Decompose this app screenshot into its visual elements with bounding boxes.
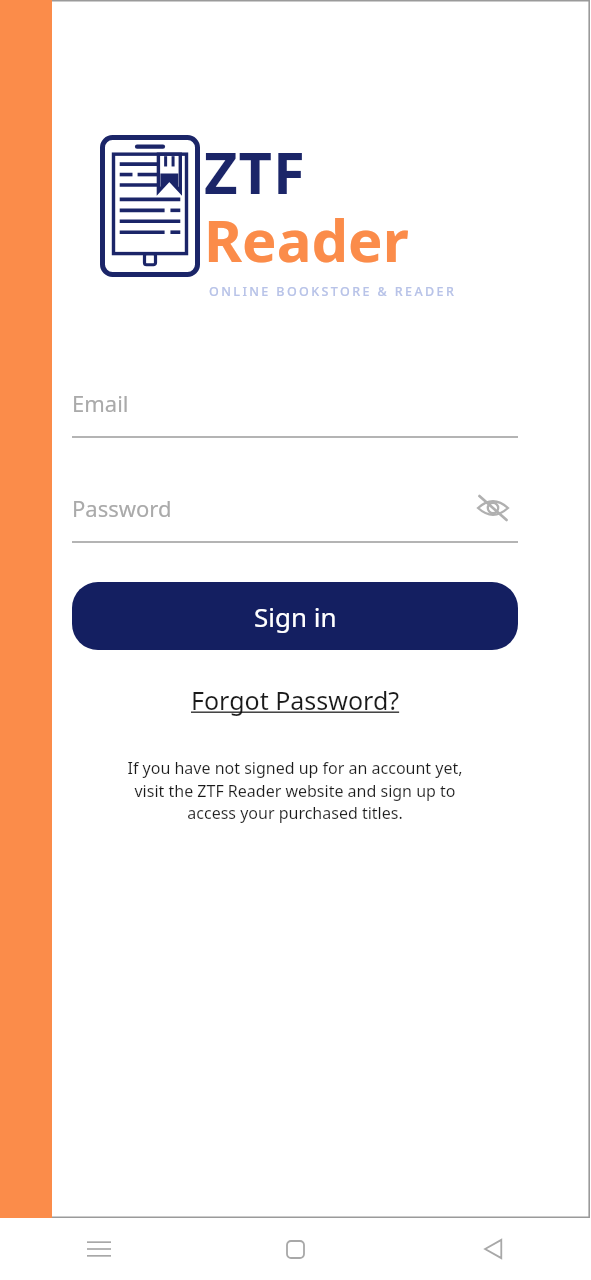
button[interactable]: Forgot Password? <box>72 678 518 722</box>
button[interactable]: Recent apps <box>0 1218 197 1280</box>
button[interactable] <box>72 473 518 543</box>
staticText: Email <box>72 388 129 418</box>
staticText: If you have not signed up for an account… <box>112 757 478 823</box>
staticText: Forgot Password? <box>191 683 400 717</box>
staticText: Password <box>72 493 172 523</box>
button[interactable]: Sign in <box>72 582 518 650</box>
staticText: ONLINE BOOKSTORE & READER <box>209 283 457 300</box>
staticText: ZTF <box>204 132 306 211</box>
button[interactable]: Home <box>197 1218 394 1280</box>
button[interactable]: Show password <box>470 485 516 531</box>
button[interactable]: Email <box>72 368 518 438</box>
button[interactable]: Back <box>394 1218 591 1280</box>
staticText: Sign in <box>254 599 337 634</box>
staticText: Reader <box>204 200 409 279</box>
